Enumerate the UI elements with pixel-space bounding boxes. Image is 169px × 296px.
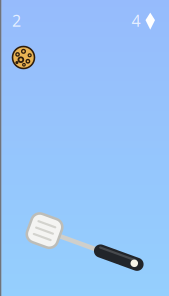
staticText: 4 xyxy=(131,10,140,31)
button[interactable]: Score, 2 xyxy=(12,10,21,31)
button[interactable]: Gems, 4 xyxy=(131,10,150,31)
staticText: 2 xyxy=(12,10,21,31)
